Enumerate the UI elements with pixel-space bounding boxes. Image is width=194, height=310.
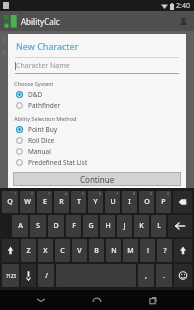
staticText: S — [36, 221, 40, 231]
staticText: AbilityCalc — [21, 16, 60, 27]
staticText: 1 — [14, 191, 17, 196]
staticText: Z — [26, 246, 31, 256]
button[interactable]: / — [38, 264, 54, 287]
staticText: P — [161, 197, 166, 207]
staticText: X — [43, 246, 48, 256]
staticText: 2 — [31, 191, 34, 196]
button[interactable]: C — [55, 239, 70, 262]
button[interactable]: . — [156, 264, 172, 287]
staticText: B — [94, 246, 99, 256]
button[interactable]: X — [38, 239, 53, 262]
button[interactable]: V — [72, 239, 87, 262]
staticText: 2:40 — [176, 1, 190, 11]
button[interactable]: W — [20, 191, 35, 213]
staticText: O — [144, 197, 150, 207]
staticText: D — [53, 221, 59, 231]
staticText: Q — [7, 197, 13, 207]
button[interactable]: G — [83, 215, 98, 237]
staticText: , — [145, 271, 147, 281]
staticText: J — [123, 221, 126, 231]
button[interactable]: Back — [26, 290, 56, 310]
button[interactable]: O — [139, 191, 154, 213]
staticText: 9 — [150, 191, 153, 196]
staticText: 7 — [116, 191, 119, 196]
staticText: 3 — [48, 191, 51, 196]
staticText: 4 — [65, 191, 68, 196]
button[interactable]: Enter — [168, 215, 192, 237]
button[interactable]: P — [156, 191, 171, 213]
staticText: I — [128, 197, 131, 207]
staticText: W — [24, 197, 31, 207]
button[interactable]: Y — [88, 191, 103, 213]
button[interactable]: A — [12, 215, 28, 237]
button[interactable]: E — [37, 191, 52, 213]
staticText: D&D — [28, 90, 43, 99]
button[interactable]: H — [100, 215, 115, 237]
button[interactable]: Character Name — [15, 61, 179, 74]
button[interactable]: Z — [21, 239, 36, 262]
button[interactable]: T — [71, 191, 86, 213]
button[interactable]: B — [89, 239, 104, 262]
button[interactable]: Manual — [8, 146, 186, 157]
staticText: A — [18, 221, 23, 231]
staticText: 5 — [82, 191, 85, 196]
staticText: 8 — [133, 191, 136, 196]
staticText: ?123 — [6, 273, 16, 279]
button[interactable]: Backspace — [173, 191, 192, 213]
staticText: New Character — [16, 40, 79, 52]
button[interactable]: Home — [82, 290, 112, 310]
button[interactable]: F — [66, 215, 81, 237]
button[interactable]: Q — [2, 191, 18, 213]
staticText: G — [88, 221, 94, 231]
staticText: C — [2, 35, 7, 45]
button[interactable]: S — [30, 215, 46, 237]
staticText: D — [2, 49, 7, 57]
staticText: Choose System — [14, 80, 54, 87]
staticText: ! — [147, 246, 149, 256]
button[interactable]: Account — [174, 12, 192, 30]
staticText: T — [77, 197, 81, 207]
button[interactable]: J — [117, 215, 132, 237]
staticText: F — [72, 221, 76, 231]
button[interactable]: ! — [140, 239, 155, 262]
button[interactable]: I — [122, 191, 137, 213]
button[interactable]: R — [54, 191, 69, 213]
staticText: 0 — [167, 191, 170, 196]
staticText: R — [59, 197, 64, 207]
button[interactable]: D — [48, 215, 64, 237]
staticText: E — [43, 197, 47, 207]
button[interactable]: Roll Dice — [8, 135, 186, 146]
button[interactable]: Voice input — [21, 264, 36, 287]
button[interactable]: Pathfinder — [8, 100, 186, 111]
button[interactable]: L — [151, 215, 166, 237]
button[interactable]: K — [134, 215, 149, 237]
button[interactable]: Point Buy — [8, 124, 186, 135]
staticText: Continue — [80, 174, 115, 185]
staticText: M — [127, 246, 134, 256]
button[interactable]: Predefined Stat List — [8, 157, 186, 168]
button[interactable]: Continue — [13, 172, 181, 186]
button[interactable]: ?123 — [2, 264, 19, 287]
staticText: Ability Selection Method — [14, 115, 77, 122]
staticText: . — [163, 271, 165, 281]
staticText: 6 — [99, 191, 102, 196]
button[interactable]: D&D — [8, 89, 186, 100]
staticText: ? — [163, 246, 167, 256]
staticText: U — [110, 197, 116, 207]
staticText: / — [45, 271, 48, 281]
button[interactable]: Shift — [2, 239, 19, 262]
button[interactable]: N — [106, 239, 121, 262]
button[interactable]: Emoji — [174, 264, 192, 287]
staticText: L — [157, 221, 161, 231]
button[interactable]: , — [138, 264, 154, 287]
staticText: Manual — [28, 147, 51, 156]
button[interactable]: Recents — [138, 290, 168, 310]
staticText: Y — [93, 197, 98, 207]
button[interactable]: Shift right — [174, 239, 192, 262]
button[interactable]: M — [123, 239, 138, 262]
button[interactable]: ? — [157, 239, 172, 262]
button[interactable]: U — [105, 191, 120, 213]
staticText: V — [77, 246, 82, 256]
staticText: H — [105, 221, 111, 231]
